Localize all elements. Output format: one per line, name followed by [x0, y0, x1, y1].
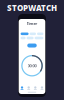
button[interactable]: Tab: [19, 86, 25, 90]
button[interactable]: Item: [27, 37, 34, 39]
button[interactable]: Item: [21, 37, 26, 39]
button[interactable]: Item: [21, 32, 29, 35]
staticText: 00:00: [27, 63, 36, 68]
staticText: Timer: [26, 21, 37, 26]
staticText: STOPWATCH: [7, 3, 57, 13]
button[interactable]: [27, 43, 37, 47]
button[interactable]: Tab: [39, 86, 45, 90]
button[interactable]: Tab: [25, 86, 32, 90]
button[interactable]: Item: [37, 32, 43, 35]
button[interactable]: Tab: [32, 86, 39, 90]
button[interactable]: Item: [30, 32, 36, 35]
